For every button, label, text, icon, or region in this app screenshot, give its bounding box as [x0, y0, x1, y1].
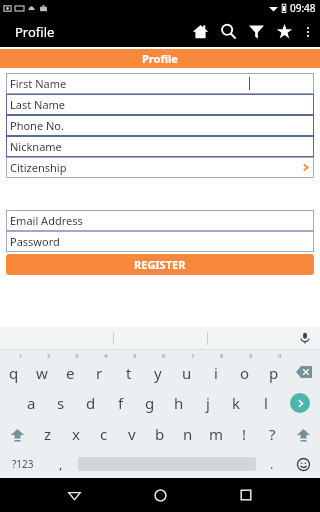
staticText: Email Address	[10, 213, 83, 228]
staticText: y	[154, 363, 162, 383]
button[interactable]: Emoji	[286, 450, 320, 478]
button[interactable]: 6	[143, 350, 172, 388]
staticText: k	[232, 393, 241, 413]
button[interactable]: 9	[230, 350, 259, 388]
button[interactable]: c	[90, 418, 118, 450]
button[interactable]: Email Address	[6, 210, 314, 231]
staticText: b	[155, 424, 165, 444]
staticText: .	[270, 455, 274, 473]
button[interactable]: j	[193, 388, 222, 418]
staticText: z	[44, 424, 52, 444]
staticText: w	[36, 363, 48, 383]
button[interactable]: 2	[28, 350, 56, 388]
button[interactable]: f	[106, 388, 135, 418]
button[interactable]: ,	[46, 450, 76, 478]
staticText: Last Name	[10, 97, 66, 112]
staticText: o	[240, 363, 250, 383]
button[interactable]: 3	[56, 350, 85, 388]
button[interactable]: Shift	[286, 418, 320, 450]
button[interactable]: Home	[186, 16, 214, 47]
button[interactable]: d	[76, 388, 106, 418]
staticText: 1	[19, 352, 23, 360]
button[interactable]: .	[258, 450, 286, 478]
button[interactable]: n	[174, 418, 202, 450]
staticText: 09:48	[290, 1, 316, 15]
button[interactable]: 7	[172, 350, 201, 388]
staticText: n	[183, 424, 193, 444]
staticText: Profile	[15, 23, 55, 41]
button[interactable]: REGISTER	[6, 254, 314, 275]
staticText: 5	[133, 352, 137, 360]
staticText: 0	[278, 352, 282, 360]
staticText: c	[100, 424, 108, 444]
staticText: Nickname	[10, 139, 62, 154]
button[interactable]: Voice input	[296, 329, 314, 347]
staticText: h	[174, 393, 184, 413]
staticText: e	[66, 363, 75, 383]
staticText: 2	[47, 352, 51, 360]
staticText: First Name	[10, 76, 67, 91]
button[interactable]: b	[146, 418, 174, 450]
button[interactable]: Favorites	[270, 16, 298, 47]
staticText: l	[264, 393, 268, 413]
button[interactable]: Nickname	[6, 136, 314, 157]
button[interactable]: l	[251, 388, 280, 418]
button[interactable]: v	[118, 418, 146, 450]
button[interactable]: Search	[214, 16, 242, 47]
button[interactable]: Shift	[0, 418, 34, 450]
button[interactable]: Recent apps	[229, 478, 263, 512]
staticText: i	[214, 363, 218, 383]
staticText: Password	[10, 234, 60, 249]
button[interactable]: More options	[298, 16, 318, 47]
staticText: s	[57, 393, 65, 413]
staticText: 6	[162, 352, 166, 360]
button[interactable]: Password	[6, 231, 314, 252]
staticText: Phone No.	[10, 118, 64, 133]
button[interactable]: First Name	[6, 73, 314, 94]
staticText: d	[86, 393, 96, 413]
button[interactable]: Back	[57, 478, 91, 512]
staticText: t	[126, 363, 132, 383]
button[interactable]: 8	[201, 350, 230, 388]
button[interactable]: Last Name	[6, 94, 314, 115]
button[interactable]: m	[202, 418, 230, 450]
staticText: 7	[191, 352, 195, 360]
staticText: REGISTER	[134, 257, 186, 272]
button[interactable]: s	[46, 388, 76, 418]
staticText: !	[242, 424, 247, 444]
button[interactable]: Phone No.	[6, 115, 314, 136]
staticText: u	[182, 363, 192, 383]
button[interactable]: h	[164, 388, 193, 418]
staticText: m	[209, 424, 224, 444]
button[interactable]: 0	[259, 350, 288, 388]
button[interactable]: a	[16, 388, 46, 418]
button[interactable]: !	[230, 418, 258, 450]
button[interactable]: 1	[0, 350, 28, 388]
staticText: 4	[104, 352, 108, 360]
button[interactable]: Citizenship	[6, 157, 314, 178]
button[interactable]: Filter	[242, 16, 270, 47]
button[interactable]: ?123	[0, 450, 46, 478]
button[interactable]: 5	[114, 350, 143, 388]
button[interactable]: ?	[258, 418, 286, 450]
button[interactable]: 4	[85, 350, 114, 388]
button[interactable]: Enter	[280, 388, 320, 418]
staticText: 3	[75, 352, 79, 360]
staticText: x	[72, 424, 80, 444]
staticText: ?123	[12, 457, 34, 471]
staticText: p	[269, 363, 279, 383]
staticText: q	[9, 363, 19, 383]
button[interactable]: k	[222, 388, 251, 418]
button[interactable]: Backspace	[288, 350, 320, 388]
button[interactable]: Home	[143, 478, 177, 512]
staticText: v	[128, 424, 136, 444]
staticText: f	[118, 393, 124, 413]
button[interactable]: g	[135, 388, 164, 418]
button[interactable]: x	[62, 418, 90, 450]
button[interactable]: z	[34, 418, 62, 450]
staticText: Profile	[142, 51, 178, 66]
staticText: 8	[220, 352, 224, 360]
staticText: a	[27, 393, 36, 413]
staticText: r	[96, 363, 103, 383]
